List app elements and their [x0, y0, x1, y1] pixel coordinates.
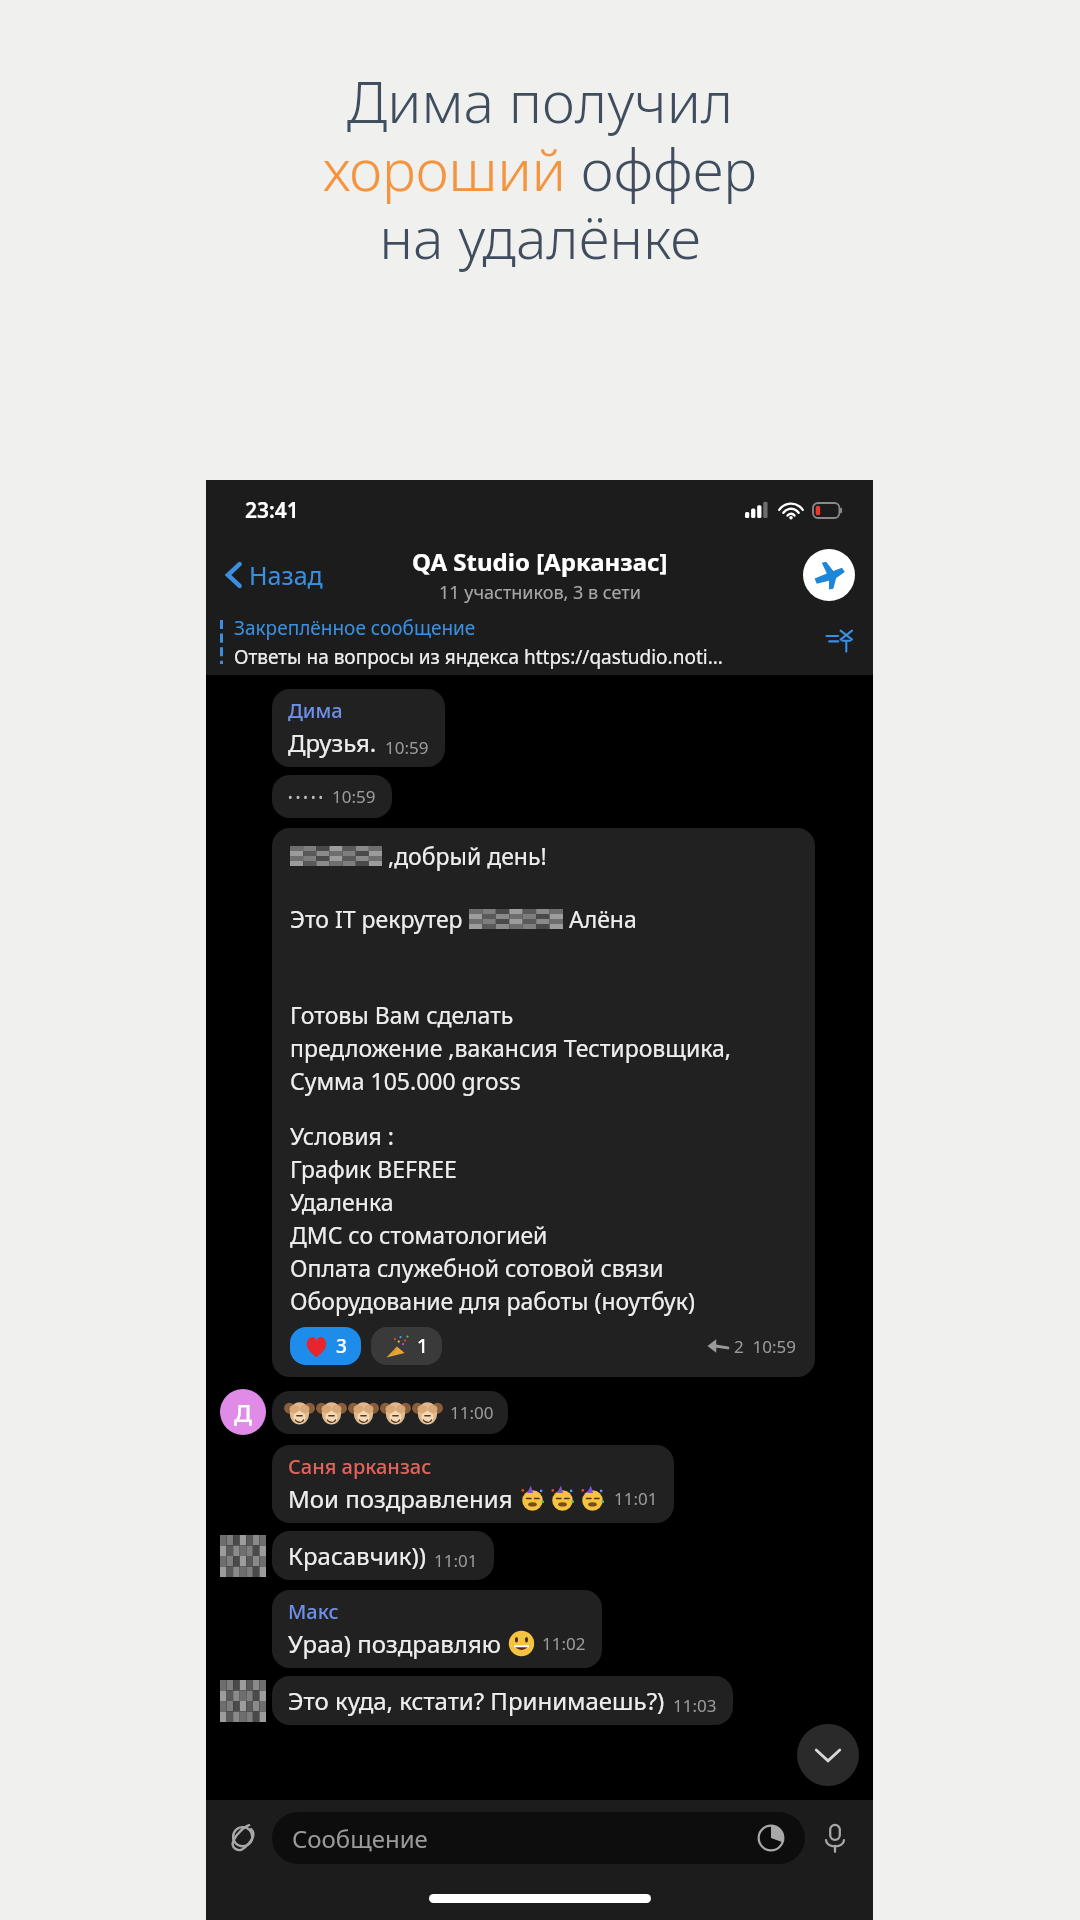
- staticText: Дима получил хороший оффер на удалёнке: [0, 62, 1080, 276]
- staticText: 11:01: [434, 1549, 478, 1572]
- staticText: 23:41: [245, 496, 299, 525]
- button[interactable]: 1: [371, 1327, 442, 1365]
- staticText: Это IT рекрутер: [290, 903, 469, 934]
- staticText: Алёна: [563, 903, 637, 934]
- staticText: 3: [336, 1333, 347, 1359]
- button[interactable]: Chat avatar: [803, 549, 855, 601]
- staticText: 11:02: [542, 1632, 586, 1655]
- staticText: 11 участников, 3 в сети: [439, 580, 641, 605]
- staticText: 1: [417, 1333, 428, 1359]
- button[interactable]: Сообщение: [272, 1812, 805, 1864]
- staticText: Удаленка: [290, 1186, 394, 1217]
- staticText: 11:03: [673, 1694, 717, 1717]
- staticText: График BEFREE: [290, 1153, 457, 1184]
- button[interactable]: Красавчик)): [272, 1531, 494, 1580]
- staticText: Красавчик)): [288, 1539, 426, 1572]
- staticText: Ответы на вопросы из яндекса https://qas…: [234, 644, 723, 670]
- staticText: Оплата служебной сотовой связи: [290, 1252, 664, 1283]
- staticText: QA Studio [Арканзас]: [412, 545, 668, 578]
- staticText: 11:00: [450, 1401, 494, 1424]
- button[interactable]: QA Studio [Арканзас]: [412, 545, 668, 605]
- button[interactable]: 11:00: [272, 1391, 508, 1434]
- staticText: Макс: [288, 1598, 339, 1625]
- staticText: Дима: [288, 697, 343, 724]
- button[interactable]: Voice message: [815, 1818, 855, 1858]
- staticText: 11:01: [614, 1487, 658, 1510]
- button[interactable]: Это куда, кстати? Принимаешь?): [272, 1676, 733, 1725]
- button[interactable]: 3: [290, 1327, 361, 1365]
- staticText: ,добрый день!: [382, 840, 547, 871]
- staticText: 10:59: [332, 785, 376, 808]
- button[interactable]: Саня арканзас: [272, 1445, 674, 1523]
- staticText: Условия :: [290, 1120, 394, 1151]
- staticText: Сообщение: [292, 1822, 428, 1855]
- button[interactable]: Макс: [272, 1590, 602, 1668]
- staticText: Ураа) поздравляю: [288, 1627, 508, 1660]
- staticText: Это куда, кстати? Принимаешь?): [288, 1684, 665, 1717]
- staticText: Мои поздравления: [288, 1482, 519, 1515]
- button[interactable]: Attach: [224, 1818, 264, 1858]
- button[interactable]: Закреплённое сообщение: [206, 609, 873, 675]
- staticText: 10:59: [385, 736, 429, 759]
- button[interactable]: Scroll to bottom: [797, 1724, 859, 1786]
- staticText: Назад: [249, 558, 323, 592]
- staticText: Саня арканзас: [288, 1453, 432, 1480]
- button[interactable]: Pinned messages: [825, 627, 855, 657]
- staticText: Сумма 105.000 gross: [290, 1065, 521, 1096]
- staticText: Готовы Вам сделать: [290, 999, 514, 1030]
- button[interactable]: Дима: [272, 689, 445, 767]
- button[interactable]: • • • • •: [272, 775, 392, 818]
- staticText: Закреплённое сообщение: [234, 615, 476, 641]
- staticText: • • • • •: [288, 789, 324, 805]
- staticText: 2 10:59: [734, 1335, 797, 1358]
- staticText: Друзья.: [288, 726, 377, 759]
- staticText: ДМС со стоматологией: [290, 1219, 548, 1250]
- button[interactable]: ,добрый день!: [272, 828, 815, 1377]
- staticText: Д: [234, 1396, 252, 1429]
- button[interactable]: Назад: [220, 552, 329, 598]
- staticText: предложение ,вакансия Тестировщика,: [290, 1032, 731, 1063]
- button[interactable]: Avatar Д: [220, 1389, 266, 1435]
- staticText: Оборудование для работы (ноутбук): [290, 1285, 695, 1316]
